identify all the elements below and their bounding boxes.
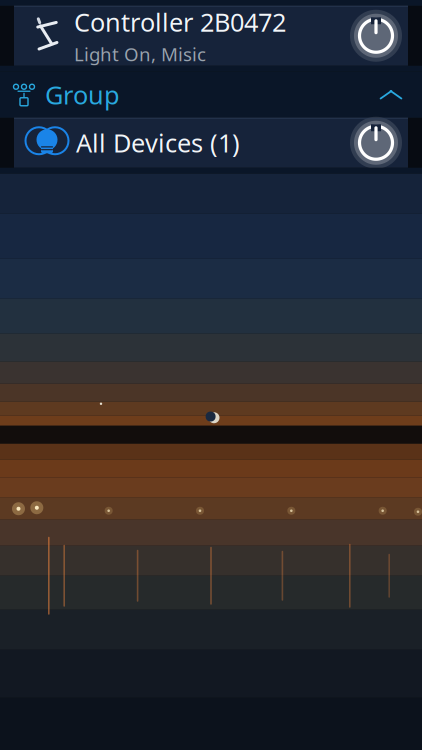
button[interactable]: Controller 2B0472	[14, 6, 408, 66]
staticText: Controller 2B0472	[74, 5, 286, 39]
button[interactable]: Collapse Group	[372, 78, 410, 112]
staticText: Group	[45, 78, 120, 111]
staticText: All Devices (1)	[76, 126, 240, 159]
staticText: Light On, Misic	[74, 42, 206, 66]
button[interactable]: All Devices (1)	[14, 118, 408, 168]
